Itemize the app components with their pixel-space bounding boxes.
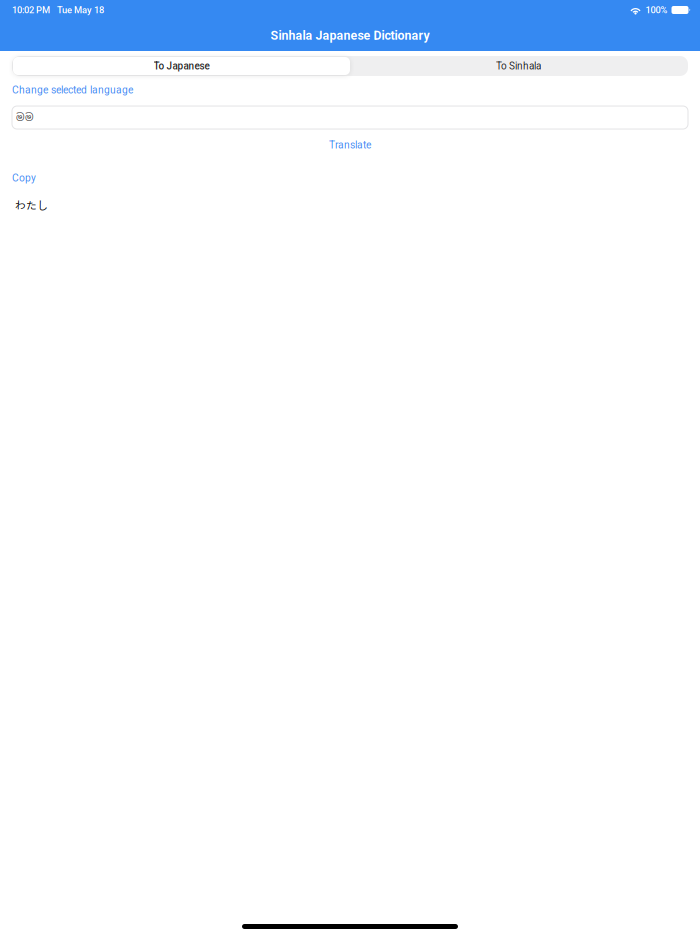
staticText: Translate bbox=[329, 139, 371, 151]
button[interactable]: Translate bbox=[0, 129, 700, 156]
staticText: Tue May 18 bbox=[57, 4, 104, 15]
button[interactable]: To Sinhala bbox=[350, 57, 687, 75]
staticText: わたし bbox=[15, 197, 48, 212]
staticText: 10:02 PM bbox=[12, 4, 50, 15]
button[interactable]: Copy bbox=[0, 156, 700, 190]
button[interactable]: Change selected language bbox=[0, 76, 700, 106]
staticText: 100% bbox=[645, 4, 667, 15]
staticText: To Sinhala bbox=[496, 60, 541, 72]
button[interactable]: To Japanese bbox=[13, 57, 350, 75]
staticText: Change selected language bbox=[12, 84, 133, 96]
staticText: To Japanese bbox=[153, 60, 209, 72]
staticText: මම bbox=[16, 111, 34, 124]
staticText: Copy bbox=[12, 172, 36, 184]
staticText: Sinhala Japanese Dictionary bbox=[270, 28, 429, 43]
